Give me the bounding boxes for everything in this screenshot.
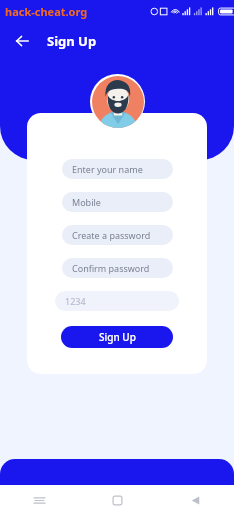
staticText: Enter your name: [72, 163, 143, 175]
button[interactable]: Enter your name: [62, 159, 173, 179]
button[interactable]: Bottom bar: [0, 459, 234, 485]
button[interactable]: 1234: [55, 291, 179, 311]
staticText: Sign Up: [99, 330, 136, 344]
staticText: Mobile: [72, 196, 101, 208]
button[interactable]: Back: [156, 485, 234, 516]
staticText: hack-cheat.org: [5, 4, 88, 19]
button[interactable]: Mobile: [62, 192, 173, 212]
staticText: Create a password: [72, 229, 151, 241]
button[interactable]: Profile photo: [90, 74, 145, 129]
button[interactable]: Home: [78, 485, 156, 516]
button[interactable]: Create a password: [62, 225, 173, 245]
button[interactable]: Recent apps: [0, 485, 78, 516]
button[interactable]: Confirm password: [62, 258, 173, 278]
button[interactable]: Sign Up: [61, 326, 173, 348]
button[interactable]: Back: [8, 27, 36, 55]
staticText: Confirm password: [72, 262, 150, 274]
staticText: Sign Up: [47, 32, 97, 50]
staticText: 1234: [65, 295, 86, 307]
